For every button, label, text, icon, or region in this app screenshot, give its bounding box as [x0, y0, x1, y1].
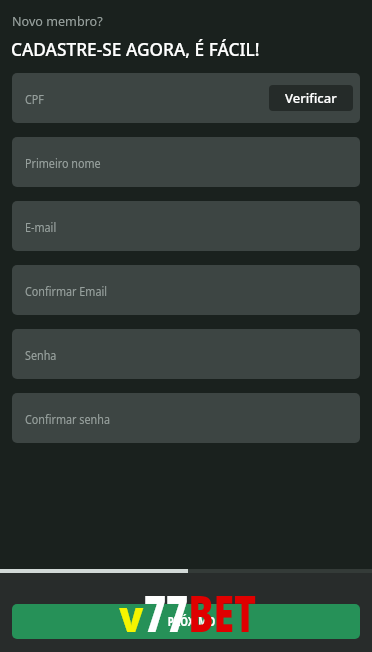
button[interactable]: Primeiro nome: [12, 137, 360, 187]
staticText: 77: [144, 579, 188, 647]
button[interactable]: Verificar: [269, 85, 353, 111]
staticText: BET: [188, 579, 257, 647]
staticText: Verificar: [285, 89, 337, 107]
button[interactable]: Senha: [12, 329, 360, 379]
staticText: Confirmar senha: [25, 410, 110, 427]
staticText: Novo membro?: [12, 13, 103, 30]
button[interactable]: E-mail: [12, 201, 360, 251]
staticText: Senha: [25, 346, 56, 363]
button[interactable]: Confirmar senha: [12, 393, 360, 443]
button[interactable]: Confirmar Email: [12, 265, 360, 315]
staticText: Confirmar Email: [25, 282, 107, 299]
other: V77BET: [121, 579, 256, 647]
staticText: V: [119, 595, 143, 642]
staticText: E-mail: [25, 218, 56, 235]
button[interactable]: CPF: [12, 73, 360, 123]
staticText: CPF: [25, 90, 45, 107]
staticText: CADASTRE-SE AGORA, É FÁCIL!: [11, 38, 260, 62]
button[interactable]: PRÓXIMO: [12, 604, 360, 639]
staticText: Primeiro nome: [25, 154, 101, 171]
staticText: PRÓXIMO: [168, 613, 215, 630]
